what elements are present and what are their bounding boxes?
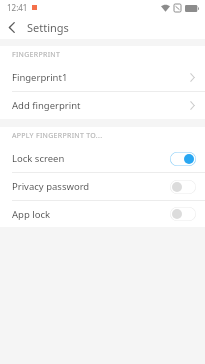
button[interactable]: Back [0, 15, 24, 39]
button[interactable]: App lock [0, 201, 205, 227]
button[interactable]: Fingerprint1 [0, 64, 205, 91]
staticText: Privacy password [12, 180, 90, 193]
staticText: Add fingerprint [12, 99, 81, 112]
staticText: Fingerprint1 [12, 71, 68, 84]
staticText: Settings [27, 20, 69, 35]
staticText: APPLY FINGERPRINT TO... [12, 131, 103, 141]
staticText: Lock screen [12, 152, 65, 165]
button[interactable]: Add fingerprint [0, 92, 205, 119]
button[interactable]: Privacy password [0, 173, 205, 200]
staticText: App lock [12, 208, 51, 221]
staticText: 12:41 [7, 2, 28, 13]
button[interactable]: Lock screen [0, 145, 205, 172]
staticText: FINGERPRINT [12, 50, 61, 60]
